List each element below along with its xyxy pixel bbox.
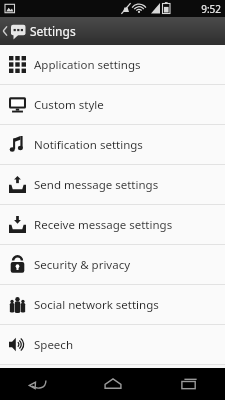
- button[interactable]: Recent apps: [150, 368, 225, 400]
- staticText: Security & privacy: [34, 257, 131, 273]
- button[interactable]: Application settings: [0, 45, 225, 84]
- staticText: Custom style: [34, 97, 104, 113]
- button[interactable]: Speech: [0, 325, 225, 364]
- staticText: Social network settings: [34, 297, 159, 313]
- staticText: Notification settings: [34, 137, 143, 153]
- staticText: 9:52: [0, 2, 221, 16]
- staticText: Receive message settings: [34, 217, 173, 233]
- button[interactable]: Up, Settings: [0, 17, 225, 45]
- button[interactable]: Home: [75, 368, 150, 400]
- staticText: Speech: [34, 337, 73, 353]
- button[interactable]: Send message settings: [0, 165, 225, 204]
- button[interactable]: Notification settings: [0, 125, 225, 164]
- staticText: Settings: [30, 23, 76, 39]
- button[interactable]: Custom style: [0, 85, 225, 124]
- button[interactable]: Social network settings: [0, 285, 225, 324]
- button[interactable]: Receive message settings: [0, 205, 225, 244]
- staticText: Application settings: [34, 57, 141, 73]
- staticText: Send message settings: [34, 177, 159, 193]
- button[interactable]: Back: [0, 368, 75, 400]
- button[interactable]: Security & privacy: [0, 245, 225, 284]
